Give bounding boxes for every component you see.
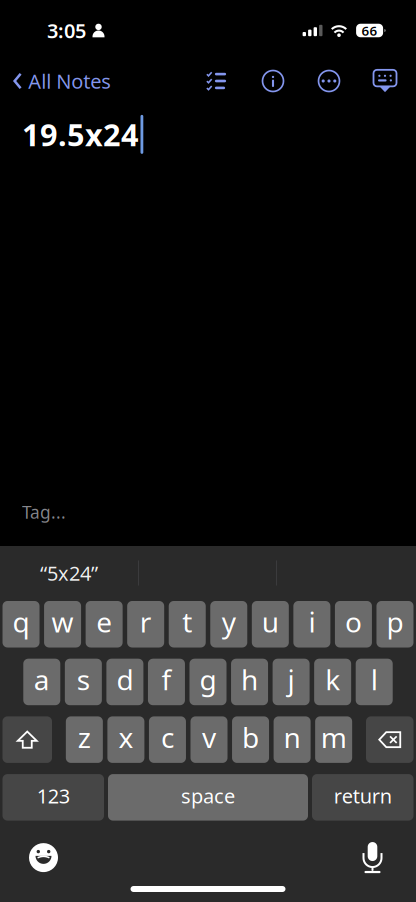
staticText: p (386, 603, 403, 640)
button[interactable]: h (231, 659, 268, 705)
button[interactable]: s (65, 659, 102, 705)
staticText: 19.5x24 (22, 114, 139, 155)
button[interactable]: Delete (366, 716, 413, 763)
staticText: t (182, 603, 192, 640)
button[interactable]: Emoji (21, 841, 65, 875)
button[interactable]: return (312, 774, 413, 821)
staticText: q (12, 603, 29, 640)
staticText: k (325, 661, 340, 698)
button[interactable]: space (108, 774, 308, 821)
button[interactable]: a (23, 659, 60, 705)
button[interactable]: k (314, 659, 351, 705)
button[interactable]: w (44, 601, 81, 647)
button[interactable]: Checklist (198, 59, 234, 103)
button[interactable]: r (127, 601, 164, 647)
button[interactable]: z (66, 716, 103, 763)
button[interactable]: More (310, 59, 348, 103)
staticText: z (78, 719, 91, 756)
staticText: space (181, 783, 235, 809)
staticText: 123 (37, 783, 70, 809)
button[interactable]: e (86, 601, 123, 647)
staticText: g (199, 661, 216, 698)
button[interactable]: v (190, 716, 227, 763)
staticText: c (161, 719, 174, 756)
button[interactable]: Dictate (350, 841, 394, 875)
staticText: return (334, 783, 392, 809)
staticText: f (161, 661, 171, 698)
button[interactable]: f (148, 659, 185, 705)
button[interactable]: b (232, 716, 269, 763)
staticText: e (96, 603, 112, 640)
button[interactable]: u (252, 601, 289, 647)
staticText: d (116, 661, 133, 698)
button[interactable]: Tag... (0, 496, 66, 528)
staticText: n (284, 719, 301, 756)
staticText: m (321, 719, 347, 756)
button[interactable]: 123 (2, 774, 104, 821)
button[interactable]: Shift (2, 716, 52, 763)
staticText: y (222, 603, 236, 640)
button[interactable]: d (106, 659, 143, 705)
staticText: j (288, 661, 295, 698)
staticText: a (34, 661, 50, 698)
button[interactable]: All Notes (0, 59, 119, 103)
button[interactable]: Hide Keyboard (366, 59, 404, 103)
staticText: s (77, 661, 90, 698)
button[interactable]: o (335, 601, 372, 647)
staticText: “5x24” (40, 560, 98, 586)
staticText: u (262, 603, 279, 640)
button[interactable]: n (274, 716, 311, 763)
button[interactable]: “5x24” (0, 546, 138, 600)
button[interactable]: q (2, 601, 39, 647)
button[interactable]: p (376, 601, 413, 647)
staticText: h (241, 661, 258, 698)
staticText: 66 (362, 22, 378, 39)
staticText: b (242, 719, 259, 756)
staticText: o (345, 603, 362, 640)
staticText: v (202, 719, 216, 756)
staticText: x (118, 719, 133, 756)
button[interactable]: i (293, 601, 330, 647)
button[interactable]: j (273, 659, 310, 705)
button[interactable]: Info (254, 59, 292, 103)
staticText: w (52, 603, 74, 640)
staticText: i (308, 603, 315, 640)
button[interactable]: y (210, 601, 247, 647)
button[interactable]: t (169, 601, 206, 647)
button[interactable]: g (189, 659, 226, 705)
button[interactable]: l (356, 659, 393, 705)
staticText: l (371, 661, 378, 698)
staticText: Tag... (22, 500, 66, 523)
button[interactable]: c (149, 716, 186, 763)
staticText: r (140, 603, 152, 640)
button[interactable]: x (107, 716, 144, 763)
staticText: All Notes (28, 68, 111, 94)
staticText: 3:05 (47, 17, 86, 44)
button[interactable]: m (315, 716, 352, 763)
